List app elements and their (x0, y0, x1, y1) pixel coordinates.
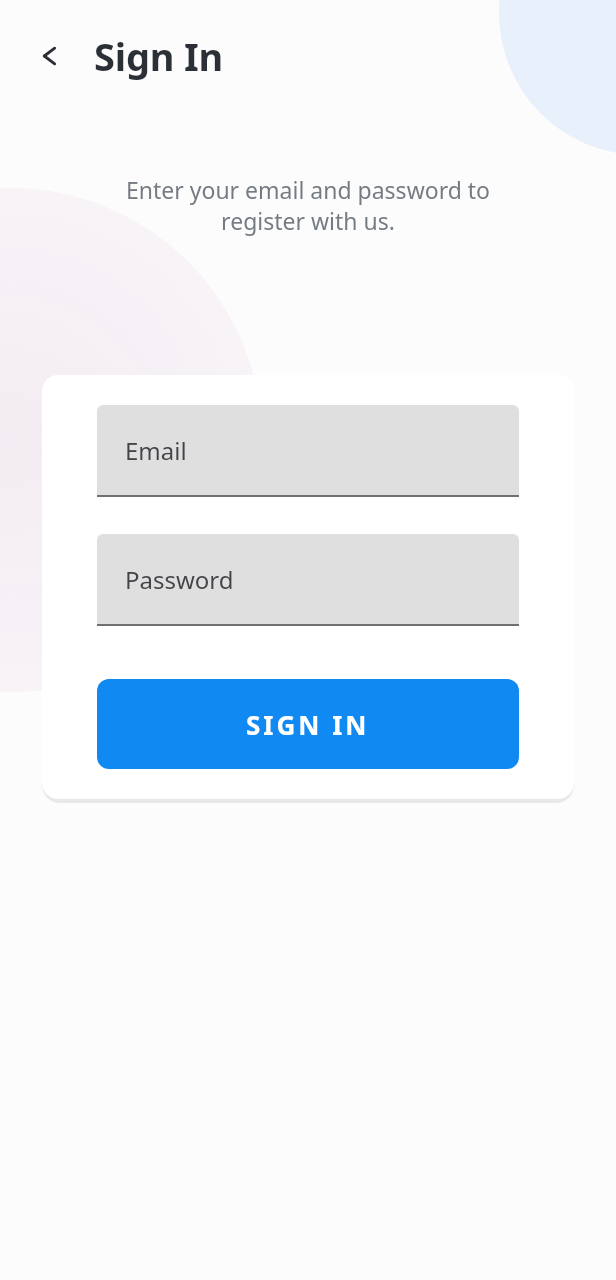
staticText: Sign In (94, 30, 223, 82)
staticText: Password (125, 563, 234, 596)
button[interactable]: Back (18, 26, 78, 86)
staticText: Email (125, 434, 187, 467)
button[interactable]: Password (97, 534, 519, 626)
button[interactable]: SIGN IN (97, 679, 519, 769)
staticText: SIGN IN (246, 707, 370, 742)
button[interactable]: Email (97, 405, 519, 497)
staticText: Enter your email and password to registe… (40, 174, 576, 237)
